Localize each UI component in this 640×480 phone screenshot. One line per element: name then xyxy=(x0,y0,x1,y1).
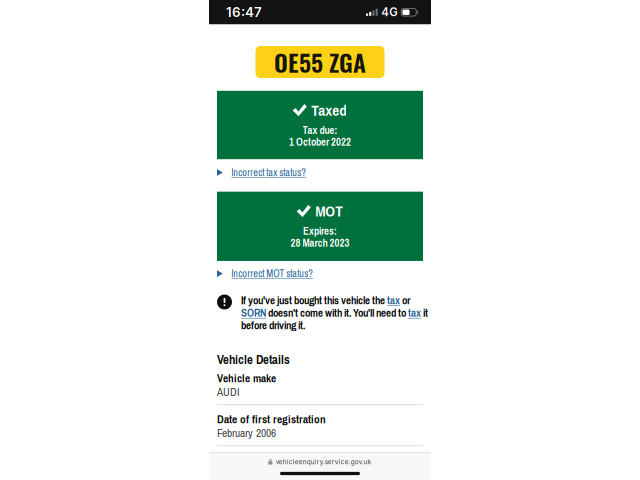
staticText: or xyxy=(400,293,410,308)
staticText: 4G xyxy=(381,5,397,19)
staticText: it xyxy=(421,305,428,320)
staticText: Vehicle Details xyxy=(217,351,290,368)
button[interactable]: vehicleenquiry.service.gov.uk xyxy=(209,456,431,468)
staticText: Vehicle make xyxy=(217,370,276,386)
staticText: Incorrect MOT status? xyxy=(231,267,313,280)
staticText: 28 March 2023 xyxy=(290,236,349,250)
button[interactable]: OE55 ZGA xyxy=(255,46,384,78)
staticText: before driving it. xyxy=(241,318,305,333)
staticText: doesn't come with it. You'll need to xyxy=(266,305,408,320)
button[interactable]: Incorrect tax status? xyxy=(217,165,423,179)
staticText: February 2006 xyxy=(217,425,276,441)
staticText: 16:47 xyxy=(226,4,262,20)
staticText: MOT xyxy=(315,201,343,221)
staticText: tax xyxy=(408,305,421,320)
staticText: If you've just bought this vehicle the xyxy=(241,293,387,308)
staticText: OE55 ZGA xyxy=(274,44,366,80)
staticText: SORN xyxy=(241,305,266,320)
staticText: Taxed xyxy=(311,100,347,120)
staticText: vehicleenquiry.service.gov.uk xyxy=(276,458,372,466)
staticText: 1 October 2022 xyxy=(289,135,351,149)
button[interactable]: Incorrect MOT status? xyxy=(217,267,423,281)
staticText: tax xyxy=(387,293,400,308)
staticText: Tax due: xyxy=(302,123,337,137)
staticText: AUDI xyxy=(217,384,240,400)
staticText: Date of first registration xyxy=(217,411,326,427)
staticText: Incorrect tax status? xyxy=(231,166,306,179)
staticText: Expires: xyxy=(303,224,337,238)
